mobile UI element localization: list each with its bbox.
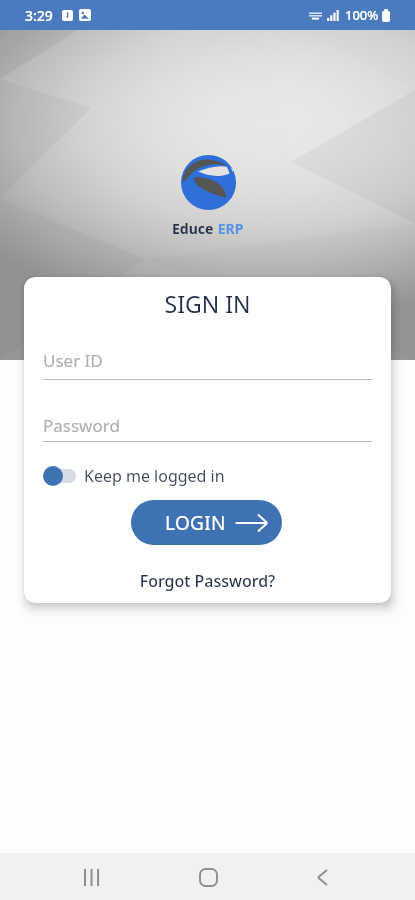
staticText: User ID	[43, 349, 103, 372]
staticText: LOGIN	[165, 510, 226, 536]
staticText: Password	[43, 414, 120, 437]
staticText: 3:29	[25, 6, 53, 25]
staticText: 100%	[345, 6, 379, 24]
button[interactable]: Recents	[71, 855, 115, 899]
button[interactable]: User ID	[43, 349, 372, 380]
button[interactable]: Keep me logged in	[43, 465, 225, 487]
button[interactable]: LOGIN	[131, 500, 282, 545]
button[interactable]: Back	[300, 855, 344, 899]
staticText: Educe	[172, 219, 214, 238]
staticText: SIGN IN	[24, 288, 391, 319]
button[interactable]: Password	[43, 414, 372, 442]
staticText: Keep me logged in	[84, 465, 225, 487]
button[interactable]: Forgot Password?	[24, 570, 391, 592]
button[interactable]: Home	[186, 855, 230, 899]
staticText: ERP	[214, 219, 244, 238]
